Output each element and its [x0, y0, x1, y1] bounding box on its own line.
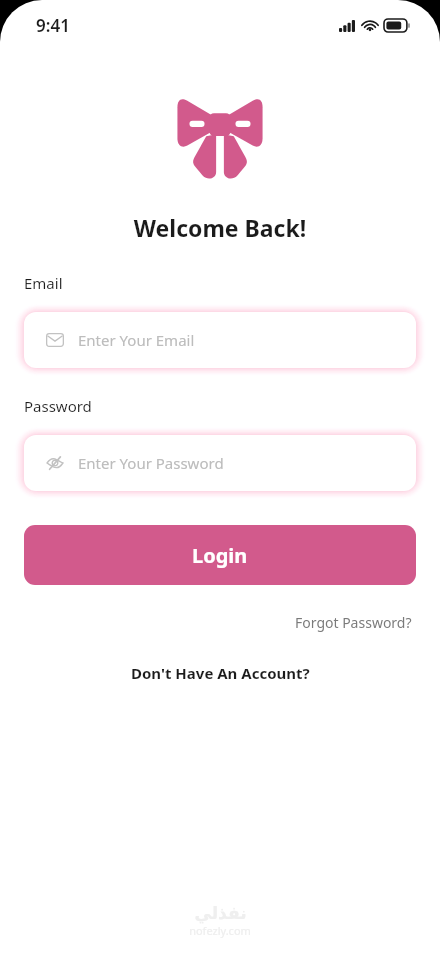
staticText: نفذلي: [194, 903, 247, 923]
button[interactable]: Enter Your Email: [24, 312, 416, 368]
staticText: Welcome Back!: [0, 212, 440, 243]
staticText: Enter Your Password: [78, 453, 224, 473]
staticText: Don't Have An Account?: [131, 663, 310, 683]
staticText: Email: [24, 273, 63, 293]
staticText: Password: [24, 396, 92, 416]
staticText: Login: [192, 542, 248, 569]
staticText: 9:41: [36, 14, 70, 37]
button[interactable]: Don't Have An Account?: [123, 659, 318, 687]
button[interactable]: Forgot Password?: [291, 609, 416, 636]
button[interactable]: Enter Your Password: [24, 435, 416, 491]
button[interactable]: Login: [24, 525, 416, 585]
staticText: nofezly.com: [189, 923, 251, 938]
staticText: Enter Your Email: [78, 330, 195, 350]
staticText: Forgot Password?: [295, 613, 412, 632]
